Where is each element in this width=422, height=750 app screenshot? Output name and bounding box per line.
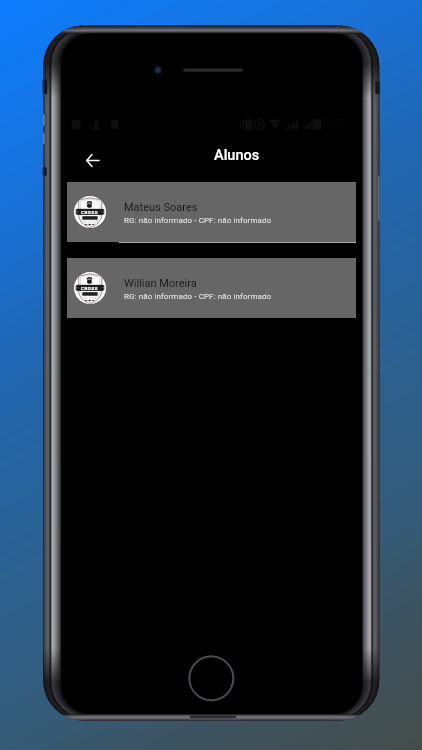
staticText: Mateus Soares <box>124 201 198 214</box>
staticText: CROSS <box>81 286 99 291</box>
staticText: RG: não informado - CPF: não informado <box>124 216 272 225</box>
staticText: RG: não informado - CPF: não informado <box>124 292 272 301</box>
button[interactable]: CROSS <box>67 182 356 243</box>
staticText: Alunos <box>214 147 260 164</box>
staticText: 12:36 <box>322 118 345 129</box>
button[interactable]: CROSS <box>67 258 356 318</box>
button[interactable]: Back <box>77 145 107 175</box>
staticText: Willian Moreira <box>124 277 197 290</box>
staticText: CROSS <box>81 210 99 215</box>
